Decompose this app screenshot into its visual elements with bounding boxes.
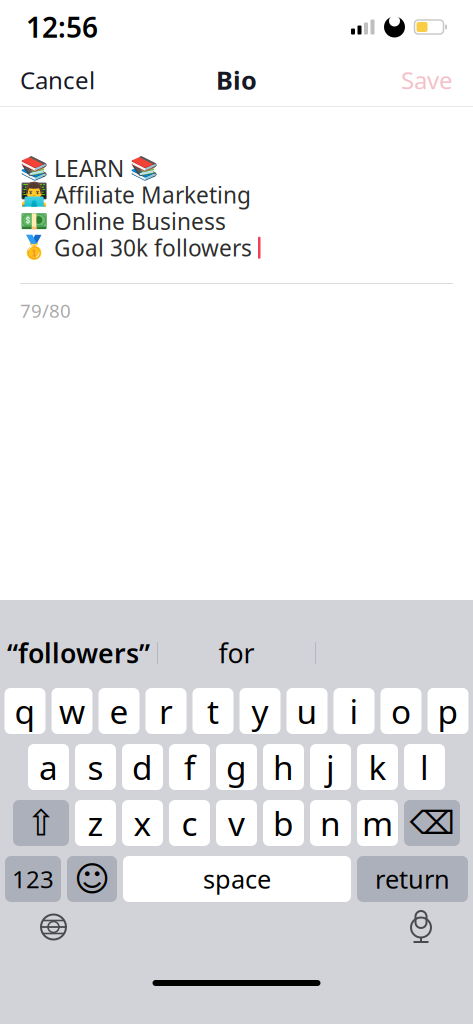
button[interactable]: a	[28, 744, 69, 790]
staticText: ⇧	[26, 803, 56, 843]
staticText: q	[14, 689, 35, 733]
staticText: i	[349, 689, 358, 733]
staticText: m	[362, 801, 393, 845]
staticText: f	[184, 745, 195, 789]
button[interactable]: Numbers	[5, 856, 61, 902]
button[interactable]: Shift	[13, 800, 69, 846]
button[interactable]: e	[98, 688, 139, 734]
button[interactable]: q	[4, 688, 45, 734]
staticText: c	[181, 801, 197, 845]
staticText: LEARN	[54, 153, 124, 183]
staticText: s	[87, 745, 103, 789]
button[interactable]: f	[169, 744, 210, 790]
staticText: Cancel	[20, 64, 95, 96]
staticText: for	[218, 635, 254, 671]
button[interactable]: g	[216, 744, 257, 790]
button[interactable]: d	[122, 744, 163, 790]
staticText: Affiliate Marketing	[54, 180, 251, 210]
button[interactable]: space	[123, 856, 351, 902]
button[interactable]: x	[122, 800, 163, 846]
button[interactable]: t	[192, 688, 233, 734]
button[interactable]: v	[216, 800, 257, 846]
staticText: 📚	[20, 155, 48, 181]
button[interactable]: b	[263, 800, 304, 846]
staticText: z	[87, 801, 103, 845]
staticText: t	[207, 689, 219, 733]
button[interactable]: m	[357, 800, 398, 846]
button[interactable]: j	[310, 744, 351, 790]
staticText: o	[391, 689, 411, 733]
button[interactable]: i	[333, 688, 374, 734]
staticText: 👨‍💻	[20, 182, 48, 208]
staticText: b	[273, 801, 294, 845]
staticText: y	[251, 689, 268, 733]
staticText: r	[159, 689, 173, 733]
button[interactable]: l	[404, 744, 445, 790]
staticText: “followers”	[7, 635, 150, 671]
staticText: ☺	[74, 859, 110, 899]
staticText: g	[226, 745, 247, 789]
button[interactable]: c	[169, 800, 210, 846]
staticText: h	[273, 745, 294, 789]
button[interactable]: “followers”	[0, 630, 157, 676]
staticText: return	[375, 862, 450, 896]
staticText: 📚	[130, 155, 158, 181]
button[interactable]: s	[75, 744, 116, 790]
button[interactable]: y	[239, 688, 280, 734]
staticText: 💵	[20, 208, 48, 234]
button[interactable]: Next keyboard	[22, 905, 85, 948]
staticText: Save	[401, 64, 453, 96]
button[interactable]: Dictation	[391, 907, 451, 947]
staticText: ⌫	[409, 805, 454, 841]
staticText: p	[437, 689, 458, 733]
staticText: k	[368, 745, 386, 789]
button[interactable]: Cancel	[0, 52, 115, 108]
staticText: Online Business	[54, 206, 226, 236]
button[interactable]: for	[158, 630, 315, 676]
button[interactable]: z	[75, 800, 116, 846]
staticText: j	[326, 745, 335, 789]
button[interactable]: return	[357, 856, 468, 902]
staticText: 🥇	[20, 235, 48, 261]
button[interactable]: w	[51, 688, 92, 734]
staticText: d	[132, 745, 153, 789]
staticText: Bio	[216, 63, 257, 97]
button[interactable]: r	[145, 688, 186, 734]
staticText: l	[420, 745, 429, 789]
staticText: Goal 30k followers	[54, 233, 252, 263]
staticText: u	[296, 689, 317, 733]
button[interactable]: k	[357, 744, 398, 790]
staticText: v	[228, 801, 245, 845]
staticText: x	[133, 801, 151, 845]
button[interactable]: h	[263, 744, 304, 790]
staticText: 79/80	[20, 298, 71, 323]
button[interactable]: n	[310, 800, 351, 846]
button[interactable]: Save	[381, 52, 473, 108]
staticText: w	[59, 689, 85, 733]
staticText: e	[109, 689, 128, 733]
staticText: n	[320, 801, 341, 845]
button[interactable]: o	[380, 688, 421, 734]
button[interactable]: Delete	[404, 800, 460, 846]
button[interactable]: p	[427, 688, 468, 734]
staticText: a	[39, 745, 58, 789]
staticText: space	[203, 862, 271, 896]
button[interactable]: u	[286, 688, 327, 734]
staticText: 123	[12, 863, 54, 895]
button[interactable]: Emoji	[67, 856, 117, 902]
staticText: 12:56	[26, 8, 98, 46]
